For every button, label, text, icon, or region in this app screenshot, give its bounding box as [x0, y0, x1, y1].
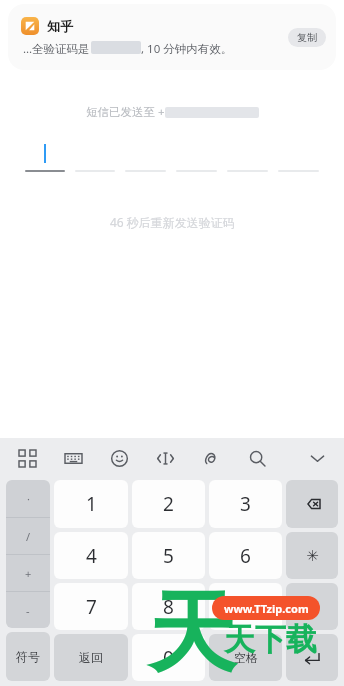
- staticText: -: [26, 603, 30, 618]
- button[interactable]: 复制: [288, 28, 326, 47]
- button[interactable]: Backspace: [286, 480, 338, 528]
- button[interactable]: 9: [209, 583, 282, 630]
- button[interactable]: Apps: [14, 445, 40, 471]
- button[interactable]: 46 秒后重新发送验证码: [110, 214, 235, 230]
- button[interactable]: [125, 138, 166, 172]
- button[interactable]: 8: [132, 583, 205, 630]
- button[interactable]: 7: [54, 583, 128, 630]
- staticText: 返回: [79, 650, 103, 665]
- button[interactable]: 空格: [209, 634, 282, 681]
- staticText: +: [25, 566, 32, 581]
- staticText: 2: [163, 491, 174, 517]
- staticText: 6: [240, 543, 251, 569]
- button[interactable]: [75, 138, 115, 172]
- staticText: 7: [86, 594, 97, 620]
- button[interactable]: ·: [6, 480, 50, 517]
- button[interactable]: 6: [209, 532, 282, 579]
- button[interactable]: 知乎: [8, 4, 336, 70]
- button[interactable]: 0: [132, 634, 205, 681]
- button[interactable]: 4: [54, 532, 128, 579]
- staticText: 46 秒后重新发送验证码: [110, 214, 235, 230]
- staticText: 1: [86, 491, 97, 517]
- button[interactable]: Clipboard: [198, 445, 224, 471]
- button[interactable]: 3: [209, 480, 282, 528]
- staticText: www.TTzip.com: [224, 601, 309, 616]
- staticText: 复制: [297, 31, 317, 44]
- button[interactable]: #: [286, 583, 338, 630]
- staticText: 知乎: [47, 18, 73, 34]
- staticText: ·: [27, 491, 30, 506]
- staticText: 天: [148, 578, 236, 686]
- staticText: #: [307, 597, 317, 617]
- staticText: 8: [163, 594, 174, 620]
- button[interactable]: [25, 138, 65, 172]
- button[interactable]: Text cursor: [152, 445, 178, 471]
- button[interactable]: Enter: [286, 634, 338, 681]
- button[interactable]: +: [6, 555, 50, 591]
- button[interactable]: 1: [54, 480, 128, 528]
- button[interactable]: 返回: [54, 634, 128, 681]
- staticText: 4: [86, 543, 97, 569]
- button[interactable]: Hide keyboard: [304, 445, 330, 471]
- staticText: 9: [240, 594, 251, 620]
- button[interactable]: [227, 138, 268, 172]
- button[interactable]: 2: [132, 480, 205, 528]
- staticText: , 10 分钟内有效。: [141, 41, 233, 57]
- staticText: 空格: [234, 650, 258, 665]
- staticText: 短信已发送至 +: [86, 104, 165, 120]
- button[interactable]: /: [6, 518, 50, 554]
- staticText: ✳: [306, 547, 319, 564]
- button[interactable]: -: [6, 592, 50, 628]
- staticText: 0: [163, 645, 174, 671]
- staticText: 符号: [16, 649, 40, 664]
- staticText: 天下载: [224, 620, 317, 659]
- button[interactable]: 5: [132, 532, 205, 579]
- button[interactable]: [176, 138, 217, 172]
- staticText: /: [26, 529, 31, 544]
- staticText: 3: [240, 491, 251, 517]
- button[interactable]: ✳: [286, 532, 338, 579]
- staticText: …全验证码是: [23, 41, 90, 57]
- button[interactable]: Emoji: [106, 445, 132, 471]
- button[interactable]: Keyboard: [60, 445, 86, 471]
- button[interactable]: 符号: [6, 632, 50, 681]
- staticText: 5: [163, 543, 174, 569]
- button[interactable]: [278, 138, 319, 172]
- button[interactable]: Search: [244, 445, 270, 471]
